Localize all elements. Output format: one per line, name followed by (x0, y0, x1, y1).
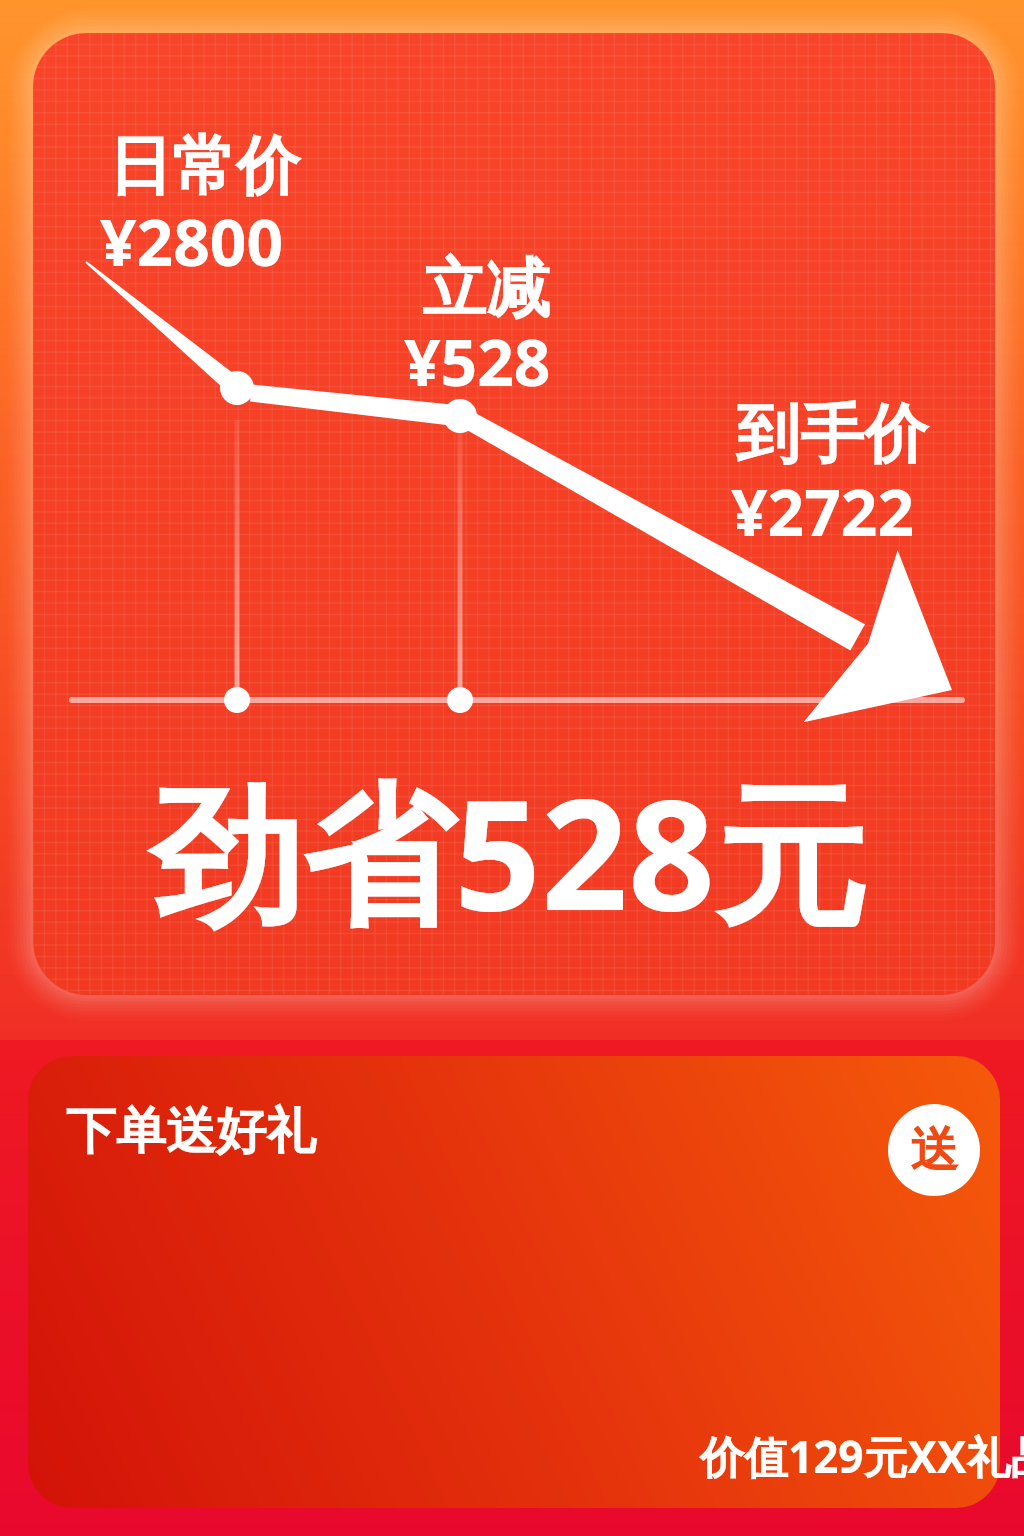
staticText: ¥2800 (100, 198, 284, 285)
staticText: 送 (910, 1120, 958, 1180)
button[interactable]: 赠送礼品 (888, 1104, 980, 1196)
staticText: 劲省528元 (150, 748, 867, 956)
staticText: 日常价 (108, 126, 300, 207)
staticText: 下单送好礼 (66, 1100, 316, 1163)
staticText: 到手价 (736, 394, 928, 475)
staticText: ¥528 (404, 318, 551, 405)
staticText: 立减 (422, 248, 550, 329)
staticText: 价值129元XX礼品 (700, 1426, 1024, 1486)
staticText: ¥2722 (731, 468, 915, 555)
